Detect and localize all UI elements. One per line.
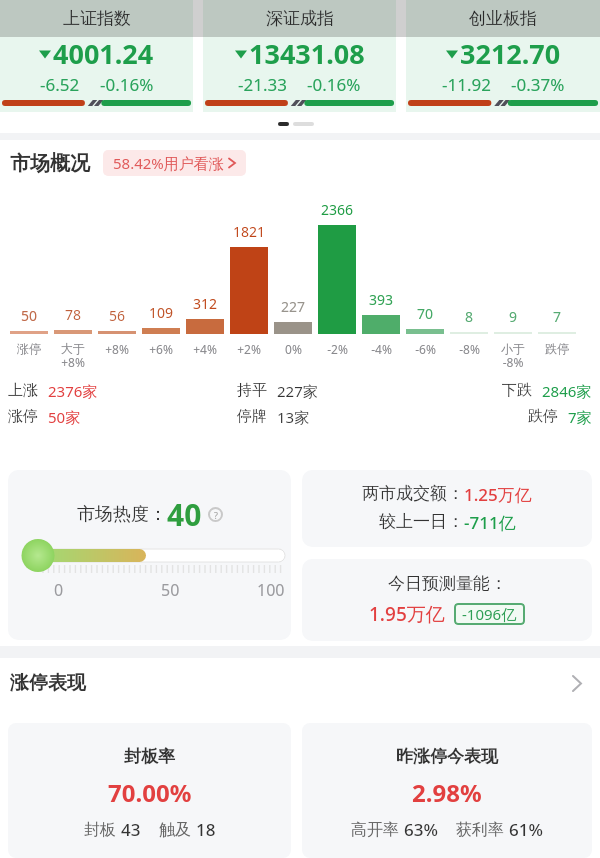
staticText: 56	[109, 306, 126, 325]
staticText: 9	[509, 307, 518, 326]
staticText: 创业板指	[469, 8, 537, 29]
staticText: 跌停	[545, 341, 569, 356]
staticText: 封板	[84, 818, 121, 840]
staticText: 1.25万亿	[464, 483, 532, 506]
staticText: -2%	[327, 341, 348, 357]
staticText: 1821	[233, 222, 266, 241]
button[interactable]: 昨涨停今表现	[302, 723, 592, 858]
staticText: 2846家	[542, 381, 592, 401]
staticText: -0.16%	[307, 73, 361, 96]
staticText: 昨涨停今表现	[396, 746, 498, 767]
staticText: 持平	[237, 381, 267, 400]
staticText: 触及	[159, 818, 196, 840]
staticText: 市场概况	[10, 151, 90, 176]
staticText: 两市成交额：	[362, 483, 464, 504]
staticText: 43	[121, 818, 141, 841]
staticText: 50家	[48, 407, 81, 427]
button[interactable]: 深证成指	[203, 0, 396, 112]
staticText: 今日预测量能：	[388, 573, 507, 594]
staticText: -0.16%	[100, 73, 154, 96]
staticText: 70	[417, 304, 434, 323]
button[interactable]: 58.42%用户看涨	[103, 150, 246, 176]
button[interactable]: 今日预测量能：	[302, 559, 592, 641]
staticText: 13家	[277, 407, 310, 427]
staticText: 涨停	[8, 407, 38, 426]
staticText: 停牌	[237, 407, 267, 426]
staticText: 13431.08	[249, 35, 365, 72]
staticText: 小于 -8%	[501, 341, 525, 371]
staticText: ?	[214, 509, 218, 521]
staticText: 2366	[321, 200, 354, 219]
staticText: 78	[65, 305, 82, 324]
staticText: 上涨	[8, 381, 38, 400]
staticText: 跌停	[528, 407, 558, 426]
button[interactable]: 涨停表现	[0, 670, 600, 696]
staticText: 0	[54, 579, 64, 601]
staticText: 58.42%用户看涨	[113, 153, 224, 173]
staticText: 50	[161, 579, 180, 601]
staticText: 63%	[404, 818, 438, 841]
staticText: -8%	[459, 341, 480, 357]
staticText: -1096亿	[462, 604, 517, 624]
staticText: 4001.24	[53, 35, 154, 72]
staticText: 0%	[285, 341, 302, 357]
staticText: 涨停表现	[10, 671, 86, 695]
staticText: 下跌	[502, 381, 532, 400]
staticText: 61%	[509, 818, 543, 841]
staticText: 上证指数	[63, 8, 131, 29]
staticText: -711亿	[464, 511, 516, 534]
staticText: 高开率	[351, 818, 404, 840]
staticText: 市场热度：	[77, 503, 167, 526]
staticText: -4%	[371, 341, 392, 357]
staticText: 较上一日：	[379, 511, 464, 532]
staticText: 获利率	[456, 818, 509, 840]
staticText: 8	[465, 307, 474, 326]
staticText: 涨停	[17, 341, 41, 356]
staticText: 大于 +8%	[61, 341, 85, 371]
staticText: 227	[281, 297, 306, 316]
staticText: 3212.70	[460, 35, 561, 72]
staticText: 7	[553, 307, 562, 326]
staticText: +2%	[237, 341, 261, 357]
staticText: 40	[167, 494, 202, 535]
staticText: 1.95万亿	[369, 601, 445, 627]
staticText: +6%	[149, 341, 173, 357]
staticText: +4%	[193, 341, 217, 357]
staticText: -21.33	[238, 73, 287, 96]
staticText: 封板率	[124, 746, 175, 767]
staticText: -6.52	[40, 73, 80, 96]
button[interactable]: 上证指数	[0, 0, 193, 112]
staticText: 227家	[277, 381, 318, 401]
staticText: -6%	[415, 341, 436, 357]
staticText: 393	[369, 290, 394, 309]
staticText: 18	[196, 818, 216, 841]
button[interactable]: 创业板指	[406, 0, 600, 112]
button[interactable]: 封板率	[8, 723, 291, 858]
staticText: -11.92	[442, 73, 491, 96]
staticText: 2376家	[48, 381, 98, 401]
staticText: 109	[149, 303, 174, 322]
staticText: 7家	[568, 407, 592, 427]
staticText: -0.37%	[511, 73, 565, 96]
staticText: 50	[21, 306, 38, 325]
staticText: 2.98%	[412, 776, 482, 809]
button[interactable]: 市场热度：	[8, 470, 291, 640]
staticText: 70.00%	[108, 776, 192, 809]
staticText: 312	[193, 294, 218, 313]
staticText: 深证成指	[266, 8, 334, 29]
staticText: +8%	[105, 341, 129, 357]
button[interactable]: 两市成交额：	[302, 470, 592, 547]
staticText: 100	[257, 579, 285, 601]
